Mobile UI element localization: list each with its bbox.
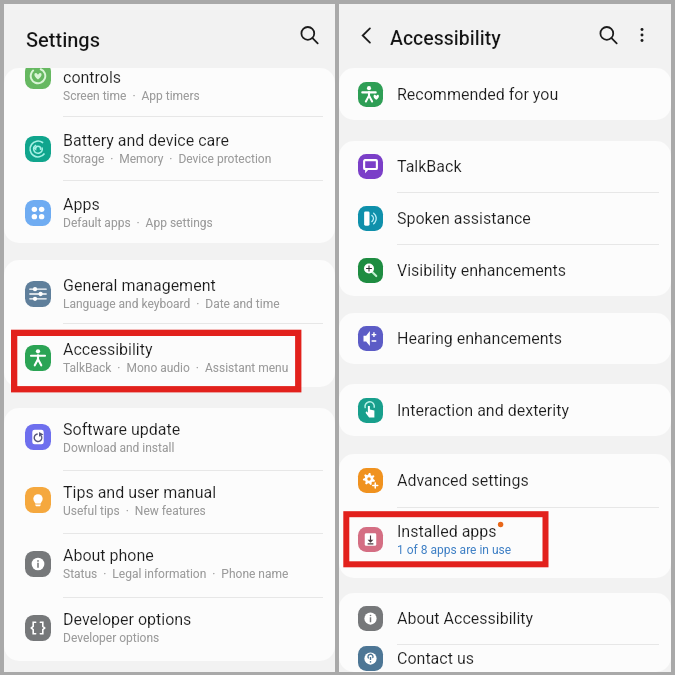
- staticText: Download and install: [63, 441, 175, 455]
- button[interactable]: More options: [626, 19, 658, 51]
- staticText: Default apps · App settings: [63, 216, 213, 230]
- staticText: Contact us: [397, 649, 474, 668]
- staticText: Storage · Memory · Device protection: [63, 152, 272, 166]
- button[interactable]: Battery and device care: [4, 117, 335, 180]
- staticText: About Accessibility: [397, 609, 534, 628]
- staticText: Installed apps: [397, 522, 497, 541]
- staticText: Recommended for you: [397, 85, 559, 104]
- staticText: Language and keyboard · Date and time: [63, 297, 280, 311]
- staticText: Developer options: [63, 631, 160, 645]
- staticText: TalkBack · Mono audio · Assistant menu: [63, 361, 289, 375]
- staticText: General management: [63, 276, 216, 295]
- button[interactable]: General management: [4, 260, 335, 323]
- staticText: Status · Legal information · Phone name: [63, 567, 289, 581]
- button[interactable]: Visibility enhancements: [339, 245, 671, 296]
- button[interactable]: Back: [350, 19, 382, 51]
- staticText: Settings: [26, 28, 101, 51]
- button[interactable]: TalkBack: [339, 141, 671, 192]
- button[interactable]: Interaction and dexterity: [339, 384, 671, 436]
- staticText: Useful tips · New features: [63, 504, 206, 518]
- button[interactable]: Advanced settings: [339, 454, 671, 507]
- button[interactable]: About Accessibility: [339, 593, 671, 644]
- staticText: Accessibility: [390, 27, 501, 50]
- button[interactable]: Digital Wellbeing and parental controls: [4, 68, 335, 116]
- button[interactable]: Apps: [4, 181, 335, 243]
- button[interactable]: Recommended for you: [339, 68, 671, 120]
- button[interactable]: About phone: [4, 534, 335, 597]
- button[interactable]: Developer options: [4, 598, 335, 661]
- button[interactable]: Search: [292, 18, 326, 52]
- staticText: Spoken assistance: [397, 209, 531, 228]
- staticText: Apps: [63, 195, 100, 214]
- staticText: Software update: [63, 420, 181, 439]
- button[interactable]: Software update: [4, 408, 335, 470]
- button[interactable]: Spoken assistance: [339, 193, 671, 244]
- staticText: 1 of 8 apps are in use: [397, 543, 512, 557]
- button[interactable]: Search: [591, 18, 625, 52]
- staticText: Hearing enhancements: [397, 329, 563, 348]
- staticText: Accessibility: [63, 340, 153, 359]
- button[interactable]: Hearing enhancements: [339, 313, 671, 364]
- button[interactable]: Tips and user manual: [4, 471, 335, 533]
- staticText: Visibility enhancements: [397, 261, 567, 280]
- staticText: Developer options: [63, 610, 192, 629]
- staticText: About phone: [63, 546, 154, 565]
- button[interactable]: Contact us: [339, 645, 671, 672]
- staticText: Battery and device care: [63, 131, 229, 150]
- staticText: TalkBack: [397, 157, 462, 176]
- staticText: Advanced settings: [397, 471, 529, 490]
- staticText: Tips and user manual: [63, 483, 217, 502]
- button[interactable]: Accessibility: [4, 324, 335, 387]
- staticText: Interaction and dexterity: [397, 401, 569, 420]
- staticText: Screen time · App timers: [63, 89, 200, 103]
- staticText: Digital Wellbeing and parental controls: [63, 68, 275, 87]
- button[interactable]: Installed apps: [339, 508, 671, 578]
